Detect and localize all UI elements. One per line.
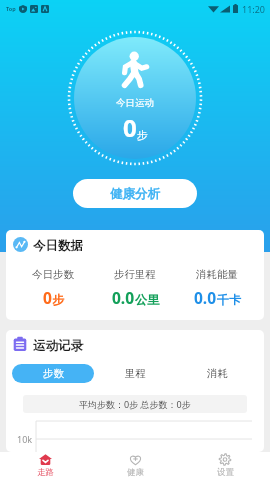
staticText: 平均步数：0步 总步数：0步 <box>79 398 191 410</box>
staticText: 健康分析 <box>110 186 160 202</box>
staticText: 今日数据 <box>33 238 83 254</box>
button[interactable]: 设置 <box>180 452 270 480</box>
staticText: 11:20 <box>242 3 266 15</box>
staticText: 0.0 <box>194 287 217 308</box>
button[interactable]: 健康分析 <box>73 179 197 208</box>
staticText: 0.0 <box>112 287 135 308</box>
staticText: 设置 <box>217 467 234 478</box>
button[interactable]: 消耗 <box>176 364 258 383</box>
staticText: Top <box>6 5 16 12</box>
staticText: 健康 <box>127 467 144 478</box>
staticText: 消耗能量 <box>196 268 238 281</box>
staticText: 0 <box>123 111 137 144</box>
staticText: 步数 <box>43 367 64 380</box>
staticText: 运动记录 <box>33 338 83 354</box>
staticText: 里程 <box>125 367 146 380</box>
button[interactable]: 里程 <box>94 364 176 383</box>
staticText: 步 <box>52 292 64 307</box>
staticText: 消耗 <box>207 367 228 380</box>
staticText: 10k <box>17 433 33 445</box>
staticText: 0 <box>43 287 52 308</box>
staticText: 千卡 <box>217 292 241 307</box>
staticText: 步行里程 <box>114 268 156 281</box>
button[interactable]: 健康 <box>90 452 180 480</box>
staticText: 走路 <box>37 467 54 478</box>
staticText: 步 <box>137 128 148 142</box>
staticText: 今日运动 <box>116 97 154 109</box>
button[interactable]: 步数 <box>12 364 94 383</box>
button[interactable]: 走路 <box>0 452 90 480</box>
staticText: 今日步数 <box>32 268 74 281</box>
staticText: 公里 <box>135 292 159 307</box>
